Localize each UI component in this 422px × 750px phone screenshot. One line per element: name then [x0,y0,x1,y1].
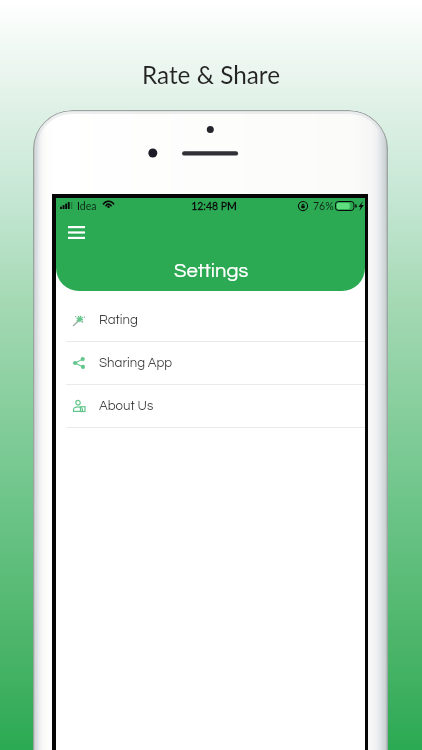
staticText: About Us [99,399,154,413]
staticText: Sharing App [99,356,173,370]
staticText: Settings [174,260,249,281]
staticText: Idea [77,200,97,213]
button[interactable]: Sharing App [56,342,365,384]
button[interactable]: Rating [56,299,365,341]
button[interactable]: About Us [56,385,365,427]
button[interactable]: Open navigation menu [60,216,93,249]
staticText: 12:48 PM [191,200,237,213]
staticText: 76% [313,200,334,213]
staticText: Rate & Share [142,60,280,89]
staticText: Rating [99,313,138,327]
